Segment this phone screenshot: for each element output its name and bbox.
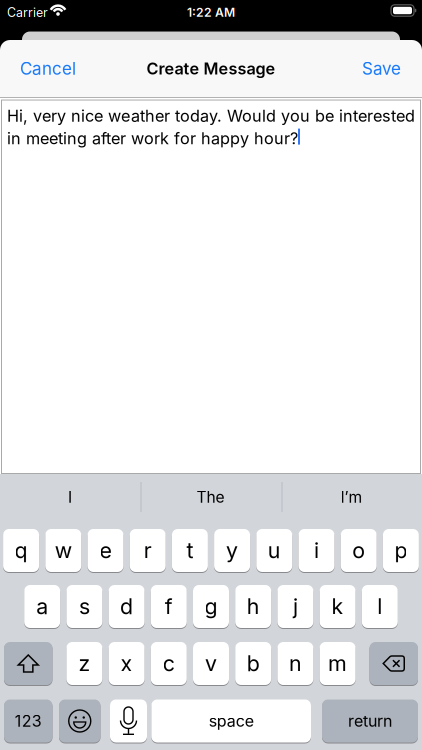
button[interactable]: z [66,642,102,686]
staticText: s [79,593,90,619]
button[interactable]: Cancel [20,58,76,79]
staticText: r [144,537,152,563]
button[interactable]: x [109,642,145,686]
staticText: I [68,488,72,506]
staticText: i [314,537,319,563]
staticText: 123 [15,711,42,731]
staticText: e [99,537,111,563]
staticText: return [348,711,392,731]
button[interactable]: j [277,585,313,629]
button[interactable]: d [109,585,145,629]
button[interactable]: a [24,585,60,629]
staticText: f [165,593,173,619]
staticText: Create Message [146,59,275,78]
button[interactable]: space [151,699,311,743]
staticText: p [394,537,407,563]
button[interactable]: Save [362,58,401,79]
staticText: The [196,488,224,506]
staticText: u [268,537,281,563]
staticText: m [328,650,347,676]
button[interactable]: b [235,642,271,686]
button[interactable]: q [3,529,39,573]
button[interactable]: o [341,529,377,573]
staticText: Save [362,58,401,79]
button[interactable]: return [322,699,418,743]
button[interactable]: g [193,585,229,629]
staticText: g [204,593,217,619]
staticText: q [15,537,28,563]
button[interactable]: t [172,529,208,573]
staticText: t [186,537,193,563]
staticText: Hi, very nice weather today. Would you b… [7,106,415,126]
button[interactable]: Shift [4,642,52,686]
staticText: b [247,650,260,676]
button[interactable]: h [235,585,271,629]
staticText: in meeting after work for happy hour? [7,129,298,148]
staticText: d [120,593,133,619]
staticText: o [352,537,365,563]
button[interactable]: I’m [281,474,422,520]
button[interactable]: s [66,585,102,629]
staticText: h [247,593,260,619]
button[interactable]: u [256,529,292,573]
button[interactable]: i [298,529,334,573]
button[interactable]: Emoji [59,699,100,743]
staticText: space [209,711,254,731]
staticText: n [289,650,302,676]
staticText: w [55,537,72,563]
staticText: c [163,650,175,676]
button[interactable]: v [193,642,229,686]
staticText: y [226,537,238,563]
staticText: j [293,593,298,619]
staticText: 1:22 AM [187,5,235,20]
staticText: z [78,650,90,676]
button[interactable]: w [45,529,81,573]
button[interactable]: m [320,642,356,686]
staticText: a [36,593,48,619]
staticText: I’m [340,488,362,506]
button[interactable]: Dictate [110,699,147,743]
button[interactable]: k [320,585,356,629]
staticText: x [121,650,133,676]
staticText: k [332,593,344,619]
button[interactable]: I [0,474,140,520]
staticText: Carrier [7,5,48,20]
button[interactable]: e [87,529,123,573]
button[interactable]: f [151,585,187,629]
staticText: v [205,650,217,676]
button[interactable]: l [362,585,398,629]
button[interactable]: 123 [4,699,52,743]
button[interactable]: Delete [369,642,418,686]
button[interactable]: r [130,529,166,573]
button[interactable]: c [151,642,187,686]
staticText: l [377,593,382,619]
button[interactable]: n [277,642,313,686]
button[interactable]: y [214,529,250,573]
staticText: Cancel [20,58,76,79]
button[interactable]: The [140,474,281,520]
button[interactable]: p [383,529,419,573]
